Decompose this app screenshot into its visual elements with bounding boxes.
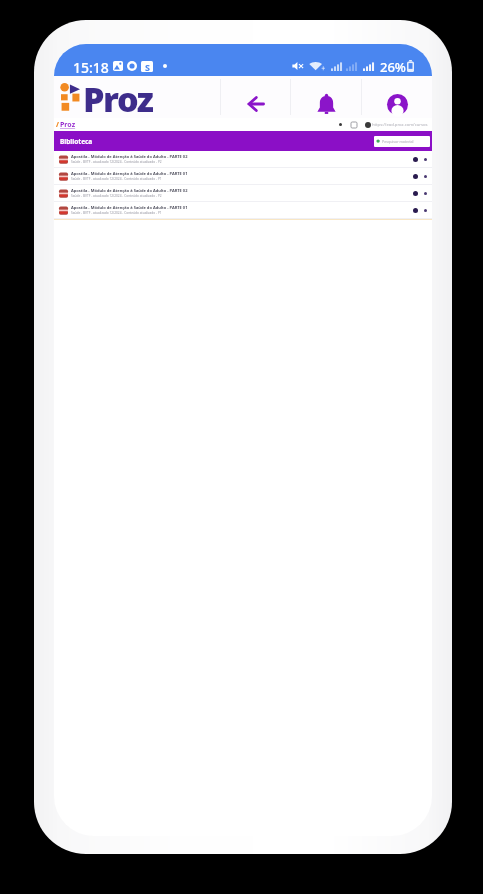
staticText: Biblioteca <box>60 137 93 146</box>
button[interactable]: More options <box>424 192 427 195</box>
staticText: Saúde - BVTF - atualizado 12/2024 - Cont… <box>71 160 162 164</box>
button[interactable]: Apostila - Módulo de Atenção à Saúde do … <box>54 168 432 184</box>
staticText: Apostila - Módulo de Atenção à Saúde do … <box>71 154 188 159</box>
button[interactable]: Download <box>413 174 418 179</box>
button[interactable]: Download <box>413 191 418 196</box>
staticText: / <box>56 120 59 130</box>
button[interactable]: More options <box>424 209 427 212</box>
button[interactable]: Download <box>413 208 418 213</box>
staticText: Pesquisar material <box>382 139 414 144</box>
button[interactable]: More options <box>424 175 427 178</box>
staticText: Saúde - BVTF - atualizado 12/2024 - Cont… <box>71 211 162 215</box>
button[interactable]: Proz <box>60 120 76 130</box>
staticText: 15:18 <box>73 58 109 74</box>
staticText: Proz <box>60 120 76 130</box>
button[interactable]: More options <box>424 158 427 161</box>
button[interactable]: Apostila - Módulo de Atenção à Saúde do … <box>54 202 432 218</box>
button[interactable]: Back <box>221 76 290 118</box>
staticText: https://ead.proz.com/cursos <box>372 122 428 128</box>
staticText: Apostila - Módulo de Atenção à Saúde do … <box>71 205 188 210</box>
button[interactable]: Proz <box>61 76 220 118</box>
staticText: Saúde - BVTF - atualizado 12/2024 - Cont… <box>71 177 162 181</box>
button[interactable]: Profile <box>362 76 432 118</box>
staticText: S <box>145 61 150 72</box>
staticText: Proz <box>83 76 153 118</box>
staticText: 26% <box>380 58 406 74</box>
button[interactable]: Notifications <box>291 76 361 118</box>
button[interactable]: Pesquisar material <box>374 136 430 147</box>
staticText: Saúde - BVTF - atualizado 12/2024 - Cont… <box>71 194 162 198</box>
staticText: Apostila - Módulo de Atenção à Saúde do … <box>71 188 188 193</box>
button[interactable]: Apostila - Módulo de Atenção à Saúde do … <box>54 151 432 167</box>
button[interactable]: Download <box>413 157 418 162</box>
button[interactable]: Apostila - Módulo de Atenção à Saúde do … <box>54 185 432 201</box>
staticText: Apostila - Módulo de Atenção à Saúde do … <box>71 171 188 176</box>
